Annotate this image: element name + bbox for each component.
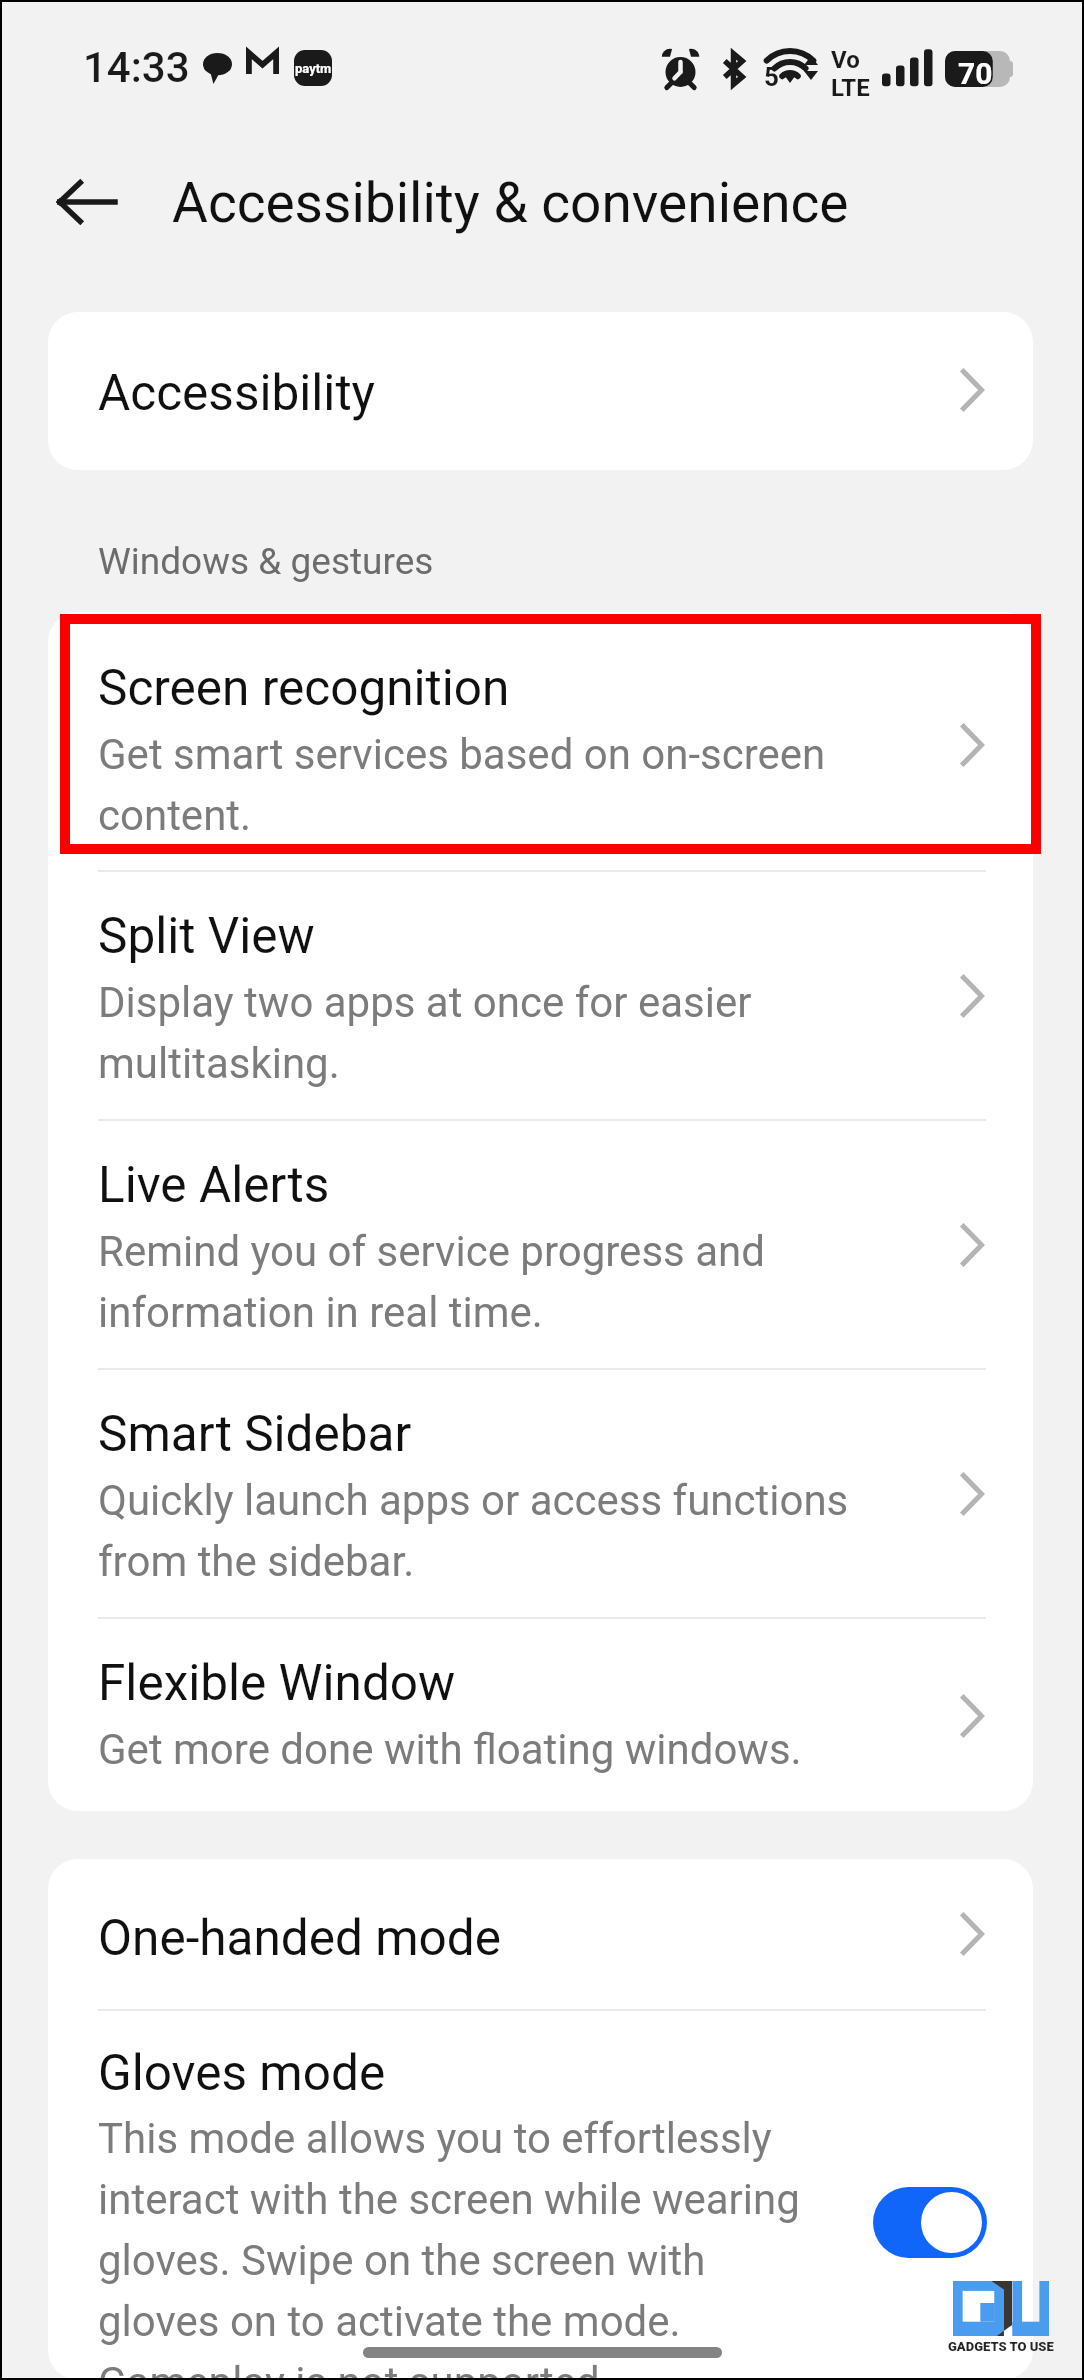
button[interactable]: Screen recognition [48,612,1033,872]
staticText: This mode allows you to effortlessly int… [98,2114,800,2380]
staticText: 70 [958,56,993,91]
staticText: Live Alerts [98,1156,330,1214]
staticText: Vo [831,46,860,74]
staticText: GADGETS TO USE [948,2339,1054,2354]
staticText: LTE [831,74,870,102]
staticText: Display two apps at once for easier mult… [98,978,752,1089]
button[interactable]: Live Alerts [48,1121,1033,1370]
staticText: Get more done with floating windows. [98,1725,802,1774]
staticText: 14:33 [83,43,190,92]
staticText: Flexible Window [98,1654,456,1712]
staticText: Quickly launch apps or access functions … [98,1476,849,1587]
button[interactable]: Gloves mode [48,2011,1033,2380]
staticText: Smart Sidebar [98,1405,412,1463]
staticText: Windows & gestures [98,540,434,583]
button[interactable]: Back [42,158,130,246]
button[interactable]: Split View [48,872,1033,1121]
staticText: Gloves mode [98,2044,386,2102]
staticText: 5 [764,62,779,92]
button[interactable]: Smart Sidebar [48,1370,1033,1619]
staticText: Screen recognition [98,659,510,717]
staticText: paytm [295,61,332,76]
button[interactable]: Gloves mode toggle [873,2187,987,2258]
staticText: Split View [98,907,315,965]
staticText: One-handed mode [98,1909,502,1967]
staticText: Accessibility & convenience [172,171,849,235]
button[interactable]: Flexible Window [48,1619,1033,1811]
button[interactable]: Accessibility [48,312,1033,470]
button[interactable]: One-handed mode [48,1859,1033,2011]
staticText: Get smart services based on on-screen co… [98,730,826,841]
staticText: Remind you of service progress and infor… [98,1227,765,1338]
staticText: Accessibility [98,364,376,422]
